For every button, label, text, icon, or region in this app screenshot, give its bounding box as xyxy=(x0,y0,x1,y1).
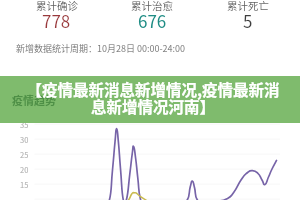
button[interactable]: 疫情趋势 xyxy=(0,76,300,123)
staticText: 累计确诊 xyxy=(36,0,78,13)
button[interactable]: 累计死亡 xyxy=(200,0,296,25)
staticText: 疫情趋势 xyxy=(12,92,56,108)
staticText: 5 xyxy=(243,8,253,33)
staticText: 778 xyxy=(42,8,71,33)
staticText: 25 xyxy=(20,149,29,160)
staticText: 【疫情最新消息新增情况,疫情最新消息新增情况河南】 xyxy=(23,78,283,117)
staticText: 676 xyxy=(138,8,167,33)
staticText: 累计死亡 xyxy=(227,0,269,13)
button[interactable]: 累计治愈 xyxy=(104,0,200,25)
staticText: 35 xyxy=(20,119,29,130)
staticText: 30 xyxy=(20,134,29,145)
staticText: 15 xyxy=(20,179,29,190)
staticText: 新增数据统计周期：10月28日 00:00-24:00 xyxy=(16,42,186,55)
staticText: 20 xyxy=(20,164,29,175)
staticText: 累计治愈 xyxy=(131,0,173,13)
button[interactable]: 累计确诊 xyxy=(9,0,104,25)
